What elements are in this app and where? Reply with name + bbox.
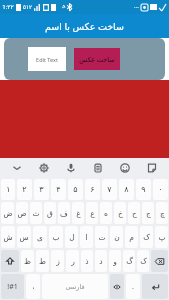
button[interactable]: ک [137, 250, 149, 272]
button[interactable]: خ [114, 202, 126, 224]
button[interactable]: ۸ [119, 179, 134, 200]
staticText: ۵ [73, 185, 78, 194]
staticText: ج [146, 209, 151, 218]
button[interactable]: Space [42, 274, 108, 299]
button[interactable]: Backspace [151, 250, 168, 272]
staticText: ظ [24, 257, 31, 266]
staticText: ل [69, 233, 75, 242]
button[interactable]: چ [156, 202, 168, 224]
staticText: ن [114, 233, 120, 242]
staticText: 1:٢٢ [2, 3, 14, 11]
button[interactable]: ا [80, 226, 93, 248]
staticText: ع [90, 209, 95, 218]
button[interactable]: Shift [1, 250, 19, 272]
button[interactable]: و [109, 250, 121, 272]
staticText: ر [71, 257, 75, 266]
button[interactable]: ب [49, 226, 63, 248]
button[interactable]: ذ [81, 250, 93, 272]
staticText: ز [56, 257, 60, 266]
button[interactable]: ساخت عکس [74, 48, 120, 70]
button[interactable]: ح [128, 202, 140, 224]
staticText: ث [32, 209, 40, 218]
staticText: م [129, 233, 134, 242]
staticText: ، [32, 283, 35, 291]
staticText: ۹ [141, 185, 146, 194]
button[interactable]: ت [95, 226, 108, 248]
button[interactable]: Stickers [142, 158, 162, 178]
staticText: د [99, 257, 103, 266]
button[interactable]: ۶ [85, 179, 100, 200]
staticText: ··· [134, 3, 139, 11]
button[interactable]: د [95, 250, 107, 272]
button[interactable]: ک [140, 226, 153, 248]
button[interactable]: ف [58, 202, 70, 224]
button[interactable]: ز [51, 250, 64, 272]
staticText: ه [104, 209, 108, 218]
button[interactable]: ۷ [102, 179, 117, 200]
staticText: ض [3, 209, 13, 218]
button[interactable]: Switch language [110, 274, 124, 299]
staticText: . [132, 282, 134, 292]
button[interactable]: ع [86, 202, 98, 224]
button[interactable]: گ [123, 250, 135, 272]
button[interactable]: ۹ [136, 179, 151, 200]
button[interactable]: ۰ [153, 179, 168, 200]
button[interactable]: ر [66, 250, 79, 272]
staticText: ۳ [39, 185, 44, 194]
button[interactable]: م [125, 226, 138, 248]
staticText: ب [52, 233, 60, 242]
button[interactable]: غ [72, 202, 84, 224]
button[interactable]: ش [1, 226, 15, 248]
staticText: ۶ [90, 185, 95, 194]
staticText: ساخت عکس [79, 55, 115, 64]
button[interactable]: Clipboard [88, 158, 108, 178]
button[interactable]: ۴ [51, 179, 66, 200]
staticText: ۱ [6, 185, 11, 194]
staticText: ۰ [158, 185, 163, 194]
staticText: ت [98, 233, 106, 242]
button[interactable]: پ [155, 226, 168, 248]
button[interactable]: ص [16, 202, 28, 224]
staticText: پ [158, 233, 166, 242]
button[interactable]: ۵ [68, 179, 83, 200]
staticText: ساخت عکس با اسم [45, 20, 124, 33]
staticText: !#1 [7, 282, 18, 292]
staticText: ذ [85, 257, 89, 266]
staticText: ط [39, 257, 46, 266]
staticText: چ [160, 209, 165, 218]
button[interactable]: ج [142, 202, 154, 224]
button[interactable]: !#1 [1, 274, 24, 299]
button[interactable]: ، [26, 274, 40, 299]
staticText: و [113, 257, 117, 266]
button[interactable]: Voice input [61, 158, 81, 178]
button[interactable]: ه [100, 202, 112, 224]
button[interactable]: س [17, 226, 31, 248]
button[interactable]: ط [36, 250, 49, 272]
button[interactable]: Emoji [115, 158, 135, 178]
button[interactable]: ۲ [17, 179, 32, 200]
button[interactable]: ظ [21, 250, 34, 272]
button[interactable]: Edit Text [28, 47, 66, 71]
button[interactable]: ض [1, 202, 14, 224]
button[interactable]: ی [33, 226, 47, 248]
button[interactable]: ۳ [34, 179, 49, 200]
staticText: ا [85, 233, 88, 242]
staticText: س [19, 233, 29, 242]
staticText: ۲ [22, 185, 27, 194]
staticText: غ [76, 209, 81, 218]
button[interactable]: Settings [34, 158, 54, 178]
button[interactable]: ق [44, 202, 56, 224]
staticText: ف [60, 209, 68, 218]
staticText: ص [17, 209, 27, 218]
button[interactable]: ث [30, 202, 42, 224]
staticText: ی [37, 233, 43, 242]
button[interactable]: ن [110, 226, 123, 248]
button[interactable]: Collapse keyboard [7, 158, 27, 178]
button[interactable]: ۱ [1, 179, 15, 200]
staticText: ح [132, 209, 137, 218]
button[interactable]: Enter [142, 274, 168, 299]
button[interactable]: . [126, 274, 140, 299]
staticText: خ [118, 209, 123, 218]
button[interactable]: ل [65, 226, 78, 248]
staticText: ۴ [56, 185, 61, 194]
